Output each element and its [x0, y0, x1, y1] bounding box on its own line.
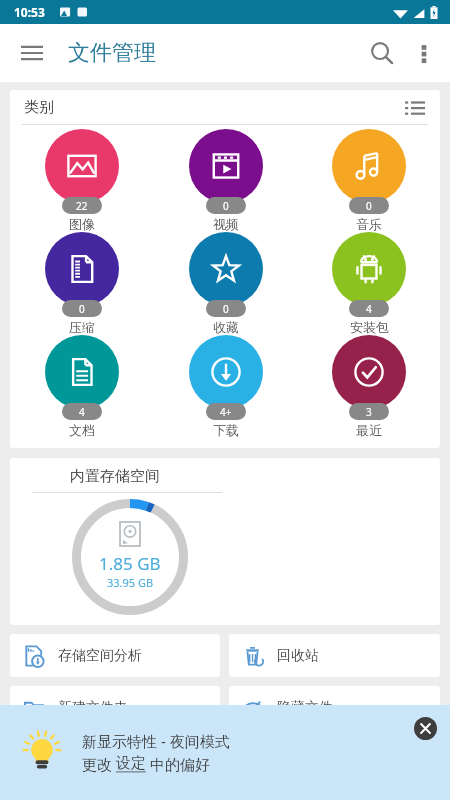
staticText: 视频 — [213, 216, 239, 232]
staticText: 类别 — [24, 98, 54, 117]
staticText: 新显示特性 - 夜间模式 — [82, 731, 230, 751]
staticText: 收藏 — [213, 319, 239, 335]
staticText: 音乐 — [356, 216, 382, 232]
staticText: 1.85 GB — [99, 552, 161, 575]
button[interactable]: 存储空间分析 — [10, 634, 220, 677]
staticText: 新建文件夹 — [58, 699, 128, 717]
button[interactable]: 4+ — [178, 335, 274, 438]
staticText: 4+ — [220, 405, 232, 419]
staticText: 设定 — [116, 754, 146, 773]
button[interactable]: 内置存储空间 — [10, 458, 440, 625]
button[interactable]: 新显示特性 - 夜间模式 — [0, 705, 450, 800]
button[interactable]: 隐藏文件 — [229, 686, 440, 729]
staticText: 0 — [223, 199, 229, 213]
button[interactable]: 回收站 — [229, 634, 440, 677]
button[interactable]: 0 — [178, 232, 274, 335]
button[interactable]: 0 — [178, 129, 274, 232]
staticText: 22 — [76, 199, 88, 213]
staticText: 4 — [79, 405, 85, 419]
staticText: 10:53 — [14, 4, 45, 20]
staticText: 最近 — [356, 422, 382, 438]
button[interactable]: 22 — [34, 129, 130, 232]
staticText: 文档 — [69, 422, 95, 438]
button[interactable]: 0 — [34, 232, 130, 335]
staticText: 安装包 — [350, 319, 389, 335]
staticText: 隐藏文件 — [277, 699, 333, 717]
staticText: 中的偏好 — [146, 754, 210, 774]
staticText: 内置存储空间 — [70, 467, 160, 486]
button[interactable]: 4 — [321, 232, 417, 335]
staticText: 3 — [366, 405, 372, 419]
button[interactable]: Menu — [10, 31, 54, 75]
staticText: 0 — [223, 302, 229, 316]
button[interactable]: 新建文件夹 — [10, 686, 220, 729]
button[interactable]: List view — [398, 90, 432, 124]
staticText: 压缩 — [69, 319, 95, 335]
staticText: 更改 — [82, 754, 116, 774]
button[interactable]: 4 — [34, 335, 130, 438]
staticText: 图像 — [69, 216, 95, 232]
button[interactable]: 3 — [321, 335, 417, 438]
staticText: 33.95 GB — [107, 575, 154, 590]
staticText: 下载 — [213, 422, 239, 438]
button[interactable]: Search — [360, 31, 404, 75]
staticText: 0 — [366, 199, 372, 213]
staticText: 0 — [79, 302, 85, 316]
staticText: 4 — [366, 302, 372, 316]
button[interactable]: More options — [404, 33, 444, 73]
button[interactable]: 0 — [321, 129, 417, 232]
staticText: 回收站 — [277, 647, 319, 665]
staticText: 存储空间分析 — [58, 647, 142, 665]
button[interactable]: Close — [408, 711, 442, 745]
staticText: 文件管理 — [68, 39, 156, 67]
